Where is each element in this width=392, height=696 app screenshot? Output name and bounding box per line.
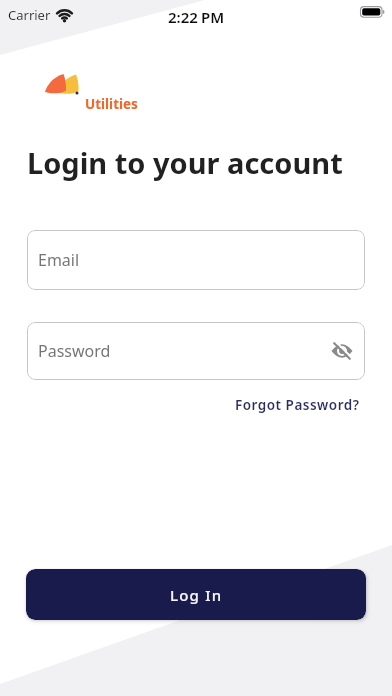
button[interactable]: Forgot Password? <box>235 396 360 414</box>
staticText: 2:22 <box>168 7 198 27</box>
button[interactable]: Email <box>27 230 365 290</box>
button[interactable]: Log In <box>26 569 366 620</box>
staticText: Carrier <box>8 6 51 24</box>
staticText: Login to your account <box>27 143 343 182</box>
button[interactable]: Password <box>27 322 365 380</box>
staticText: Utilities <box>85 95 138 113</box>
staticText: PM <box>201 7 225 27</box>
staticText: Email <box>38 249 80 271</box>
staticText: Log In <box>170 585 223 605</box>
staticText: Password <box>38 340 111 362</box>
